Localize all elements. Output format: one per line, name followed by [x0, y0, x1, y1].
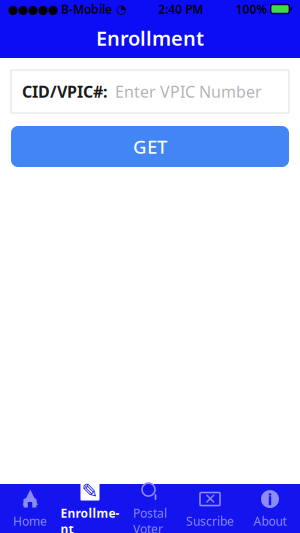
staticText: ▲ — [22, 484, 37, 507]
staticText: Postal Voter — [133, 505, 167, 533]
button[interactable]: ✕ — [180, 484, 240, 533]
staticText: CID/VPIC#: — [22, 81, 107, 102]
button[interactable]: CID/VPIC#: — [11, 70, 289, 113]
staticText: Enrollment — [96, 25, 204, 51]
staticText: Home — [13, 513, 47, 529]
staticText: ✕ — [204, 491, 216, 507]
button[interactable]: GET — [11, 126, 289, 167]
button[interactable]: i — [240, 484, 300, 533]
staticText: ✎ — [81, 480, 98, 502]
staticText: 100% — [235, 1, 267, 17]
staticText: Enter VPIC Number — [107, 81, 262, 102]
button[interactable]: ▲ — [0, 484, 60, 533]
staticText: ●●●●● B-Mobile — [8, 1, 112, 17]
staticText: About — [253, 513, 286, 529]
staticText: i — [267, 488, 272, 510]
button[interactable]: Postal Voter — [120, 484, 180, 533]
staticText: Enrollment — [60, 505, 119, 533]
staticText: 2:40 PM — [158, 1, 203, 17]
button[interactable]: ✎ — [60, 484, 120, 533]
staticText: GET — [133, 134, 167, 159]
staticText: ◔ — [112, 2, 126, 16]
staticText: Suscribe — [186, 513, 234, 529]
